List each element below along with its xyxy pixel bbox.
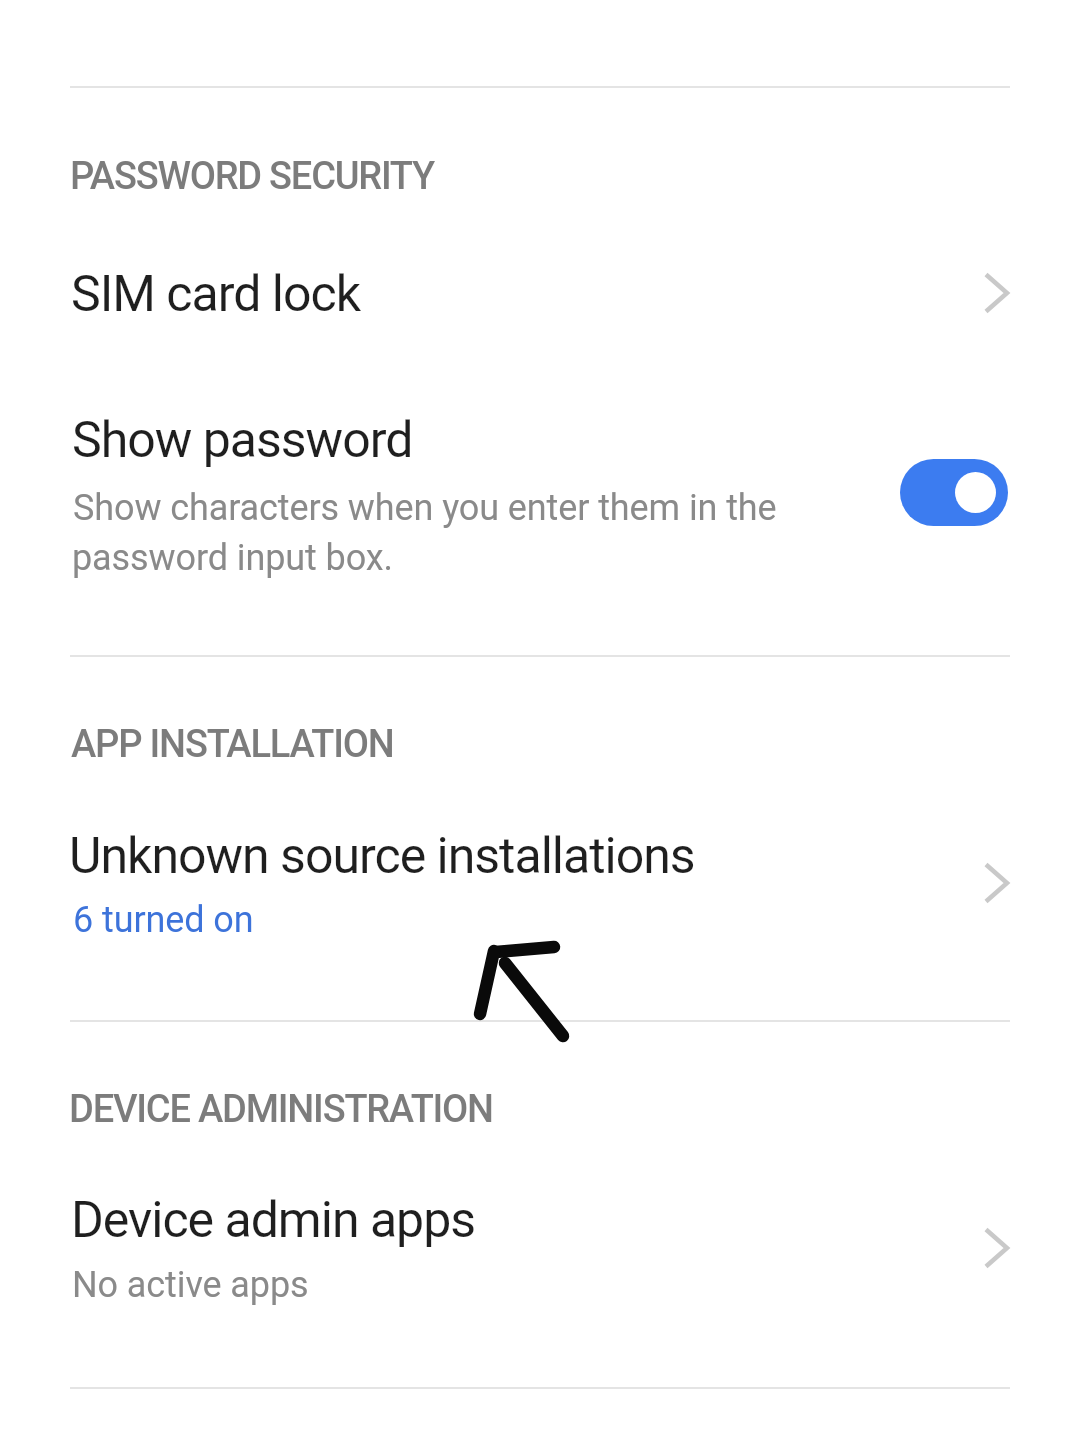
button[interactable] <box>900 459 1008 526</box>
staticText: SIM card lock <box>71 265 360 324</box>
staticText: Show characters when you enter them in t… <box>73 487 777 529</box>
staticText: DEVICE ADMINISTRATION <box>69 1087 493 1132</box>
staticText: No active apps <box>72 1264 309 1306</box>
staticText: Device admin apps <box>71 1191 476 1250</box>
button[interactable]: Unknown source installations <box>0 800 1080 960</box>
button[interactable]: SIM card lock <box>0 238 1080 348</box>
staticText: Show password <box>72 411 413 470</box>
button[interactable]: Show password <box>0 392 1080 608</box>
staticText: APP INSTALLATION <box>71 722 394 767</box>
staticText: Unknown source installations <box>69 827 695 886</box>
staticText: PASSWORD SECURITY <box>70 154 434 199</box>
button[interactable]: Device admin apps <box>0 1165 1080 1330</box>
staticText: password input box. <box>72 537 393 579</box>
staticText: 6 turned on <box>73 899 254 941</box>
